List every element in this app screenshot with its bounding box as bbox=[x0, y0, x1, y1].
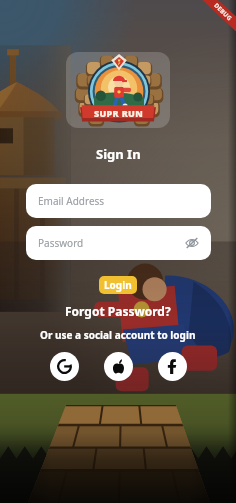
button[interactable]: Email Address bbox=[26, 184, 211, 218]
button[interactable]: Show password bbox=[185, 236, 199, 250]
button[interactable]: Login bbox=[99, 276, 137, 294]
button[interactable]: Password bbox=[26, 226, 211, 260]
staticText: Or use a social account to login bbox=[40, 328, 196, 342]
button[interactable]: Sign in with Facebook bbox=[158, 352, 187, 381]
staticText: Login bbox=[104, 278, 132, 292]
button[interactable]: Forgot Password? bbox=[65, 303, 171, 319]
staticText: Email Address bbox=[38, 194, 105, 208]
staticText: Sign In bbox=[96, 145, 141, 163]
staticText: DEBUG bbox=[212, 1, 234, 23]
staticText: Password bbox=[38, 236, 84, 250]
button[interactable]: Sign in with Google bbox=[50, 352, 79, 381]
staticText: SUPR RUN bbox=[94, 107, 143, 119]
button[interactable]: Sign in with Apple bbox=[104, 352, 133, 381]
